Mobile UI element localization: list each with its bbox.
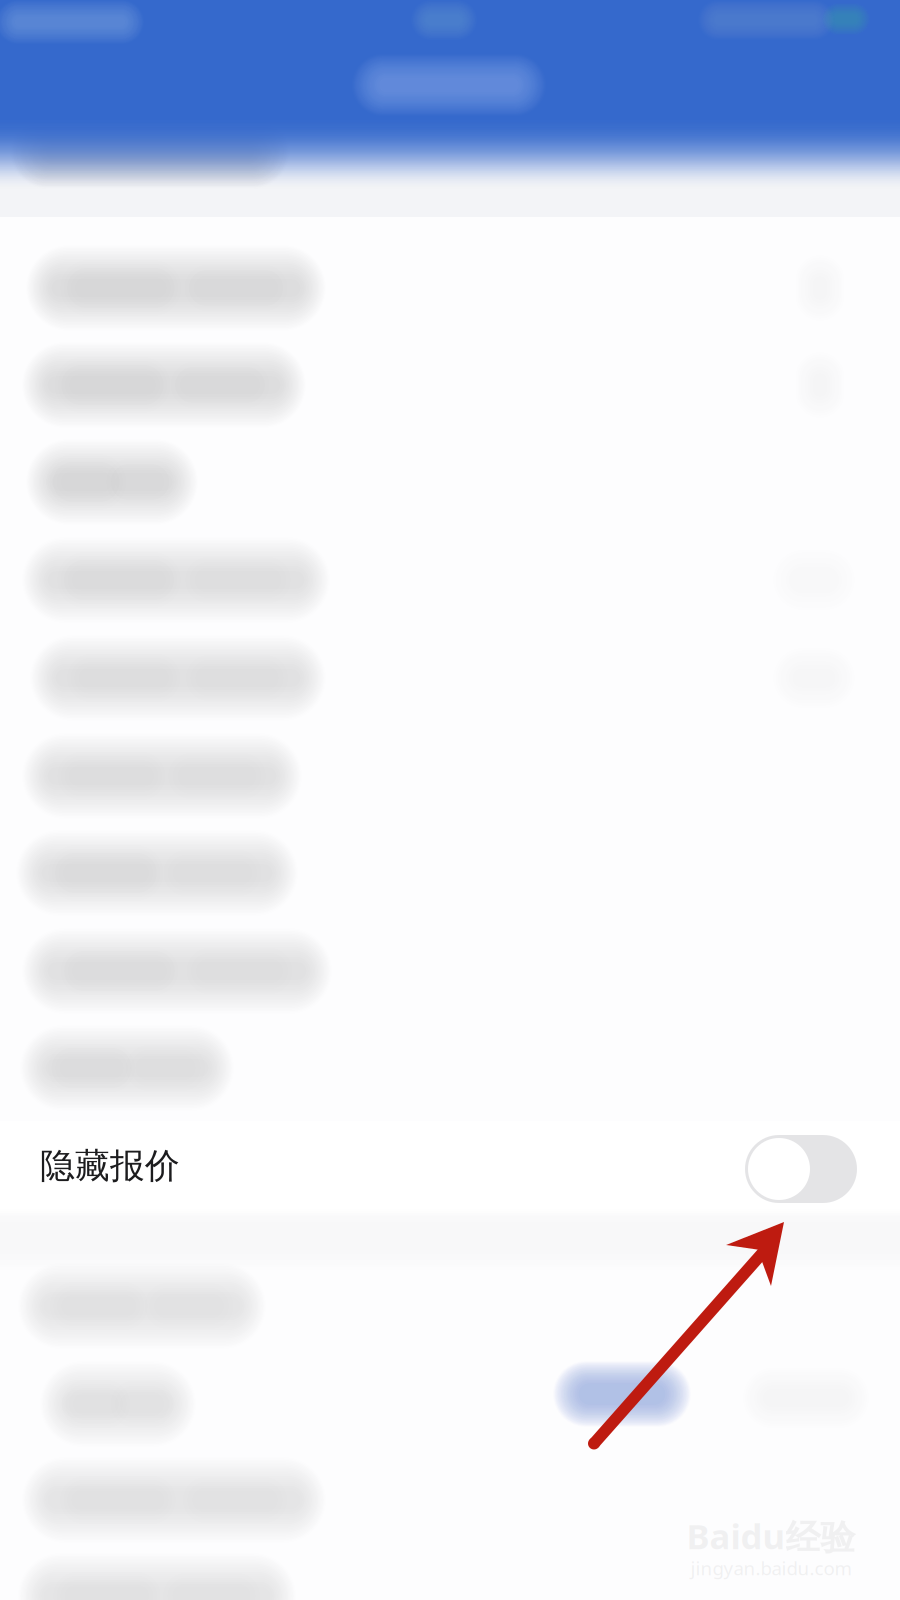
staticText: 隐藏报价: [40, 1145, 180, 1187]
button[interactable]: 隐藏报价: [0, 1121, 900, 1213]
staticText: Baidu经验: [686, 1513, 855, 1559]
staticText: jingyan.baidu.com: [690, 1556, 851, 1580]
